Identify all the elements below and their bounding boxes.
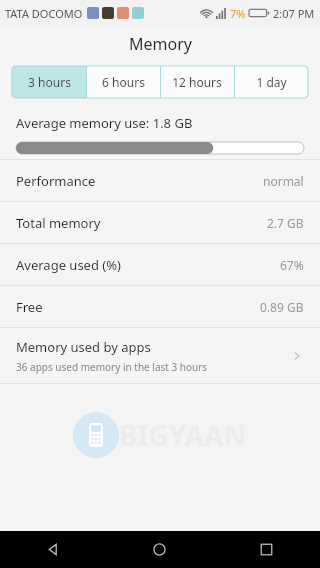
staticText: Performance [16, 172, 96, 190]
staticText: Total memory [16, 214, 101, 232]
button[interactable]: Home [106, 531, 213, 568]
button[interactable]: 3 hours [12, 66, 86, 98]
staticText: 36 apps used memory in the last 3 hours [16, 360, 208, 374]
staticText: Memory [129, 33, 192, 55]
staticText: 2.7 GB [267, 215, 304, 231]
button[interactable]: Memory used by apps [0, 328, 320, 383]
staticText: normal [263, 173, 304, 189]
staticText: Average used (%) [16, 256, 121, 274]
staticText: 67% [280, 257, 304, 273]
staticText: 3 hours [28, 74, 71, 90]
button[interactable]: Total memory [0, 202, 320, 243]
staticText: TATA DOCOMO [5, 6, 83, 21]
staticText: BIGYAAN [119, 416, 247, 454]
other: Open memory used by apps [290, 349, 304, 363]
staticText: 0.89 GB [260, 299, 304, 315]
button[interactable]: Recent apps [213, 531, 320, 568]
staticText: 6 hours [102, 74, 145, 90]
staticText: 7% [230, 6, 246, 21]
button[interactable]: Performance [0, 160, 320, 201]
staticText: 1 day [256, 74, 287, 90]
staticText: Average memory use: 1.8 GB [16, 114, 193, 132]
button[interactable]: Average used (%) [0, 244, 320, 285]
button[interactable]: Free [0, 286, 320, 327]
button[interactable]: 6 hours [86, 66, 160, 98]
staticText: Free [16, 298, 43, 316]
button[interactable]: 1 day [234, 66, 308, 98]
staticText: 2:07 PM [273, 6, 315, 21]
staticText: 12 hours [172, 74, 222, 90]
button[interactable]: 12 hours [160, 66, 234, 98]
staticText: Memory used by apps [16, 338, 151, 356]
button[interactable]: Back [0, 531, 106, 568]
